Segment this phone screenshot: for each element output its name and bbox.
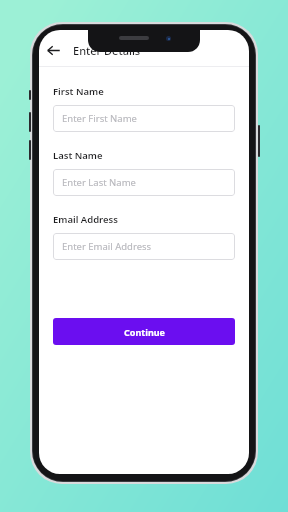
staticText: First Name	[53, 85, 104, 98]
button[interactable]: Enter Email Address	[53, 233, 235, 260]
staticText: Last Name	[53, 149, 103, 162]
staticText: Enter Last Name	[62, 176, 136, 189]
button[interactable]: Back	[41, 38, 65, 62]
staticText: Continue	[124, 326, 165, 338]
staticText: Enter Details	[73, 43, 141, 58]
button[interactable]: Continue	[53, 318, 235, 345]
staticText: Enter First Name	[62, 112, 137, 125]
staticText: Email Address	[53, 213, 118, 226]
button[interactable]: Enter Last Name	[53, 169, 235, 196]
staticText: Enter Email Address	[62, 240, 152, 253]
button[interactable]: Enter First Name	[53, 105, 235, 132]
